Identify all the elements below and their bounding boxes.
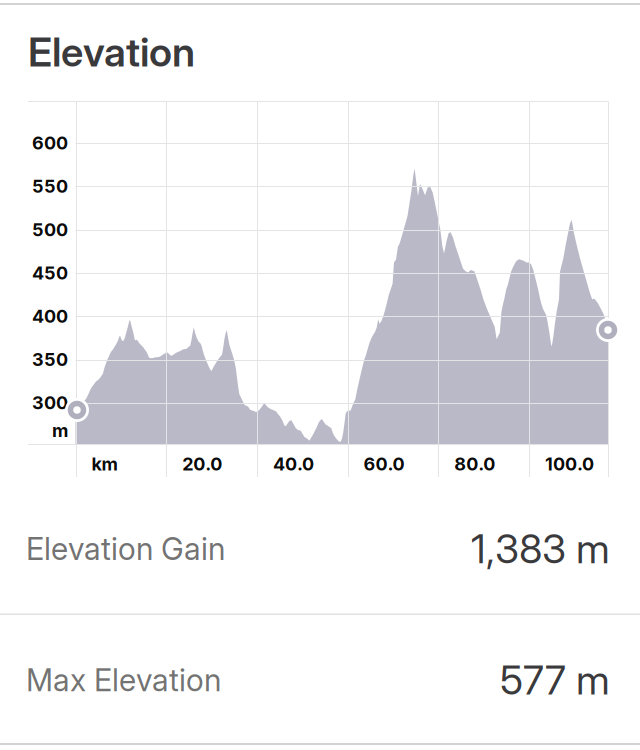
staticText: 40.0	[273, 453, 314, 475]
staticText: 80.0	[454, 453, 495, 475]
staticText: 350	[32, 349, 68, 370]
staticText: 20.0	[182, 453, 222, 475]
staticText: km	[91, 453, 117, 475]
staticText: 60.0	[364, 453, 405, 475]
staticText: 300	[32, 392, 68, 414]
button[interactable]: Max Elevation	[0, 615, 640, 741]
staticText: 1,383 m	[471, 525, 610, 573]
staticText: Max Elevation	[26, 661, 221, 698]
staticText: 100.0	[545, 453, 594, 475]
staticText: Elevation Gain	[26, 530, 225, 567]
staticText: 450	[32, 262, 68, 284]
staticText: Elevation	[28, 28, 195, 76]
staticText: 400	[32, 305, 68, 327]
staticText: 500	[32, 219, 68, 240]
staticText: 550	[32, 175, 68, 197]
staticText: 600	[32, 132, 68, 154]
staticText: m	[52, 420, 68, 441]
staticText: 577 m	[500, 656, 610, 704]
button[interactable]: Elevation Gain	[0, 480, 640, 613]
